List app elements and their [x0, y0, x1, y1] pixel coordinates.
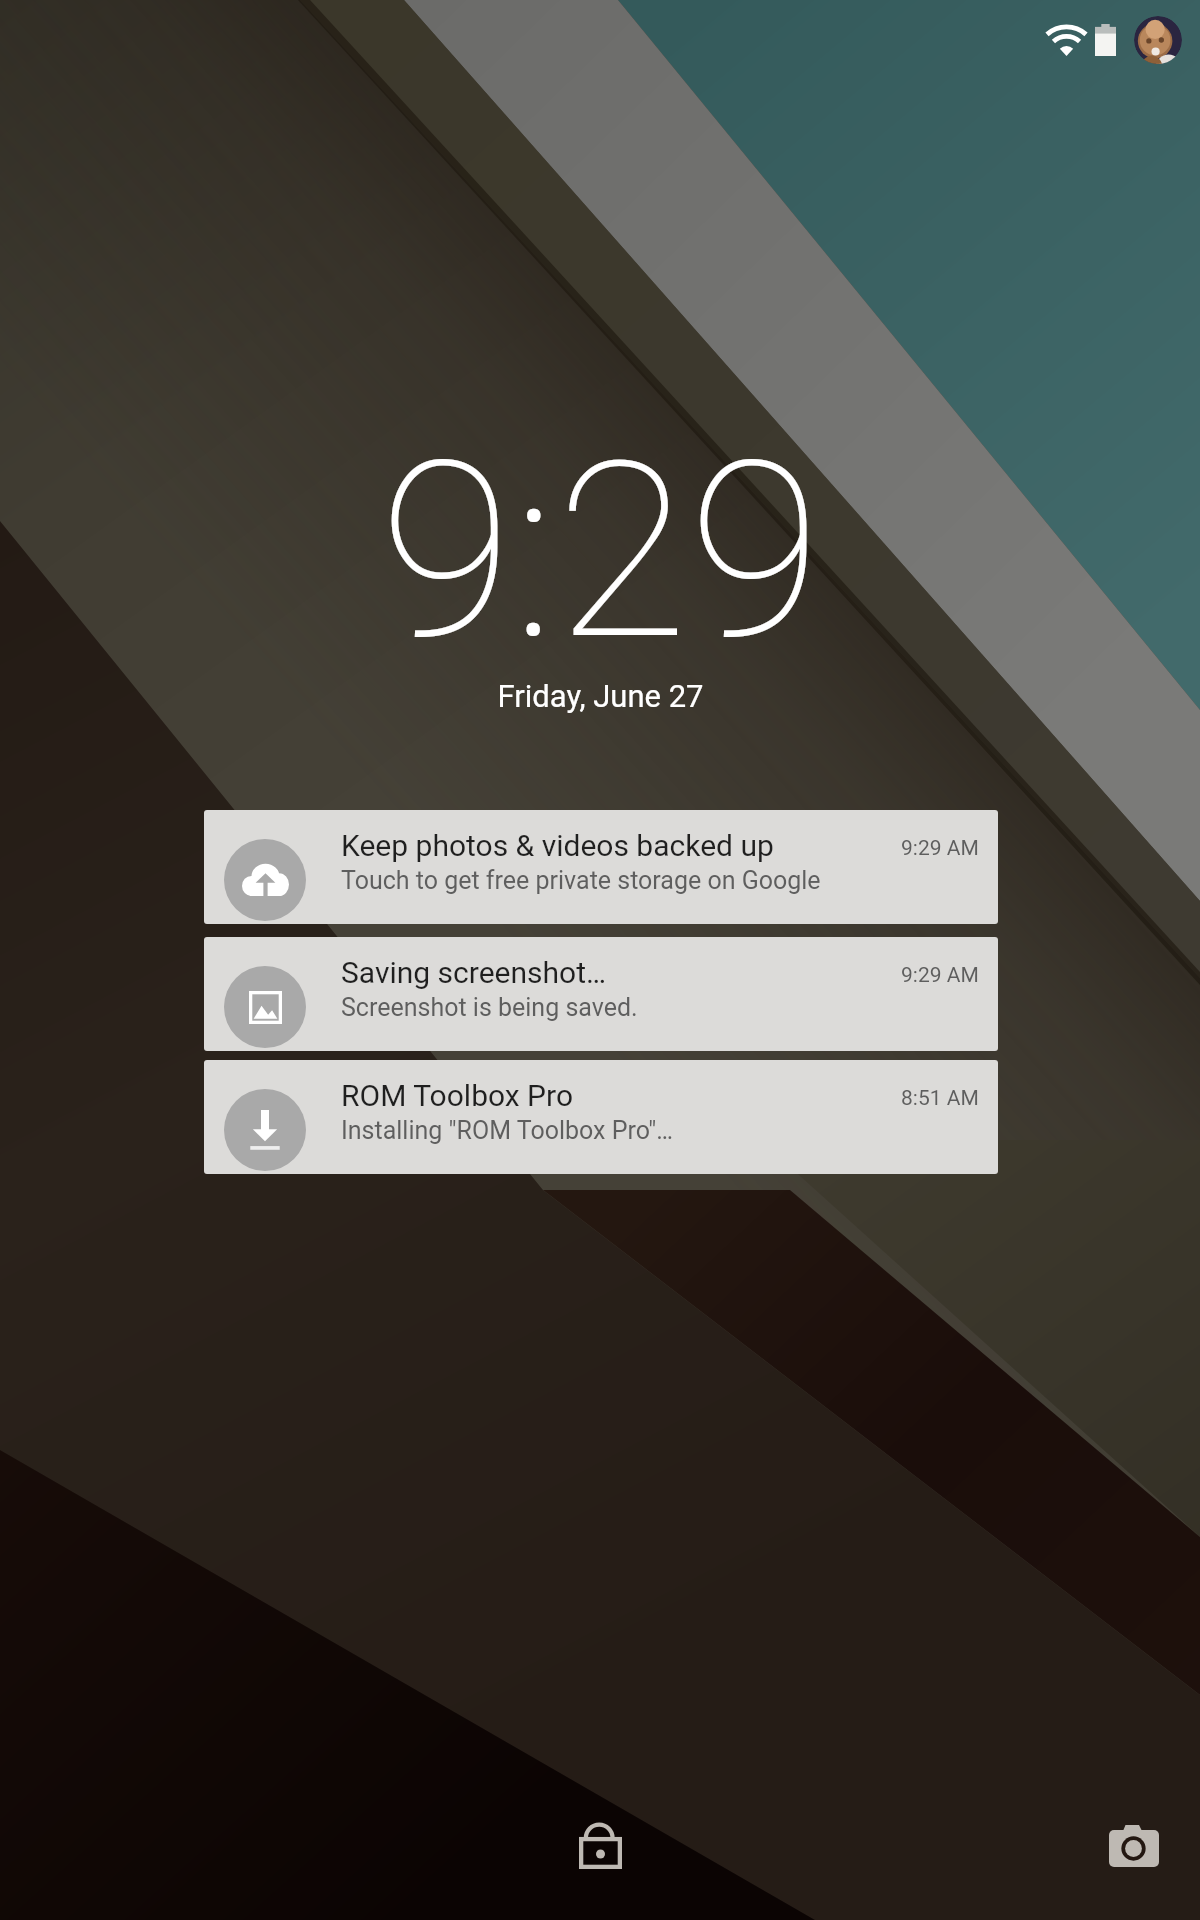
staticText: 9:29: [379, 410, 822, 695]
staticText: Installing "ROM Toolbox Pro"…: [341, 1116, 673, 1145]
button[interactable]: Unlock: [554, 1800, 646, 1892]
staticText: Keep photos & videos backed up: [341, 828, 774, 863]
button[interactable]: ROM Toolbox Pro: [204, 1060, 998, 1174]
staticText: Touch to get free private storage on Goo…: [341, 866, 821, 895]
staticText: Screenshot is being saved.: [341, 993, 638, 1022]
button[interactable]: Keep photos & videos backed up: [204, 810, 998, 924]
staticText: 8:51 AM: [901, 1086, 979, 1111]
staticText: Saving screenshot…: [341, 955, 607, 990]
staticText: 9:29 AM: [901, 836, 979, 861]
staticText: 9:29 AM: [901, 963, 979, 988]
staticText: ROM Toolbox Pro: [341, 1078, 574, 1113]
staticText: Friday, June 27: [497, 678, 704, 714]
button[interactable]: Saving screenshot…: [204, 937, 998, 1051]
button[interactable]: Camera: [1088, 1800, 1180, 1892]
